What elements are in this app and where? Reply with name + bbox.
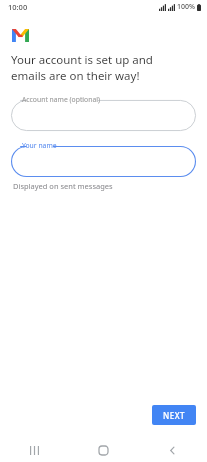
staticText: emails are on their way! xyxy=(11,68,140,84)
staticText: NEXT xyxy=(163,410,186,421)
staticText: Account name (optional) xyxy=(22,95,101,104)
button[interactable]: Your name xyxy=(11,141,196,177)
button[interactable]: Back xyxy=(138,438,207,462)
staticText: Your account is set up and xyxy=(11,52,153,68)
button[interactable]: Account name (optional) xyxy=(11,95,196,131)
staticText: 10:00 xyxy=(8,2,28,12)
staticText: 100% xyxy=(177,2,195,12)
staticText: Your name xyxy=(22,141,57,150)
button[interactable]: Home xyxy=(69,438,138,462)
button[interactable]: NEXT xyxy=(152,405,196,425)
staticText: Displayed on sent messages xyxy=(13,181,113,191)
button[interactable]: Recents xyxy=(0,438,69,462)
